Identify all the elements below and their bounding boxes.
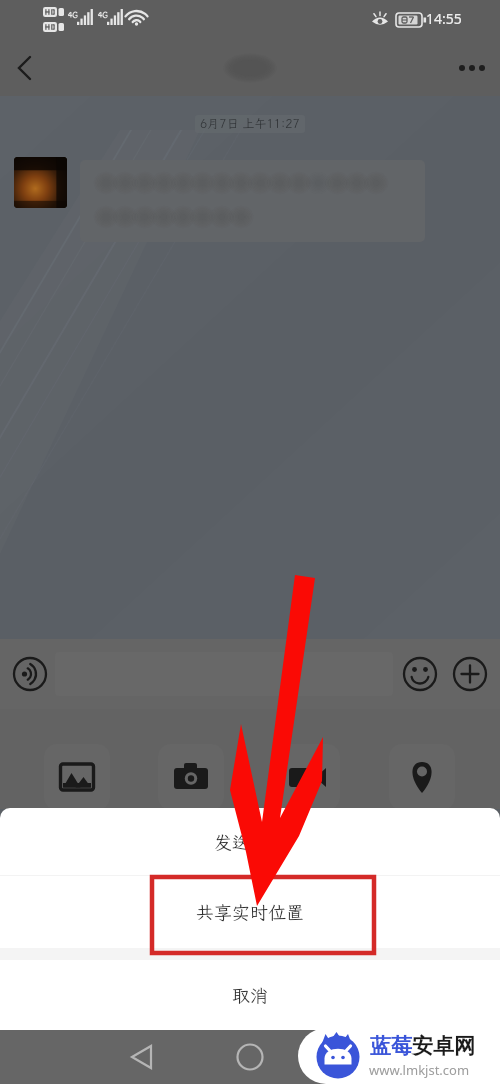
button[interactable]: 取消: [0, 960, 500, 1030]
button[interactable]: Back: [119, 1033, 167, 1081]
staticText: 发送位置: [214, 830, 286, 854]
button[interactable]: Emoji: [398, 652, 442, 696]
staticText: www.lmkjst.com: [369, 1061, 470, 1079]
staticText: 6月7日 上午11:27: [200, 116, 300, 132]
button[interactable]: 发送位置: [0, 808, 500, 875]
button[interactable]: 共享实时位置: [0, 876, 500, 948]
button[interactable]: Back: [0, 40, 48, 96]
staticText: 蓝莓: [370, 1033, 412, 1059]
button[interactable]: Camera: [158, 744, 224, 810]
button[interactable]: More options: [446, 40, 498, 96]
button[interactable]: Voice message: [8, 652, 52, 696]
staticText: 共享实时位置: [196, 900, 304, 924]
button[interactable]: Photos: [44, 744, 110, 810]
button[interactable]: [55, 652, 393, 696]
button[interactable]: Home: [226, 1033, 274, 1081]
staticText: 取消: [232, 983, 268, 1007]
button[interactable]: Location: [389, 744, 455, 810]
staticText: 安卓网: [412, 1033, 475, 1059]
staticText: 14:55: [426, 9, 462, 28]
button[interactable]: More functions: [448, 652, 492, 696]
button[interactable]: Video call: [274, 744, 340, 810]
